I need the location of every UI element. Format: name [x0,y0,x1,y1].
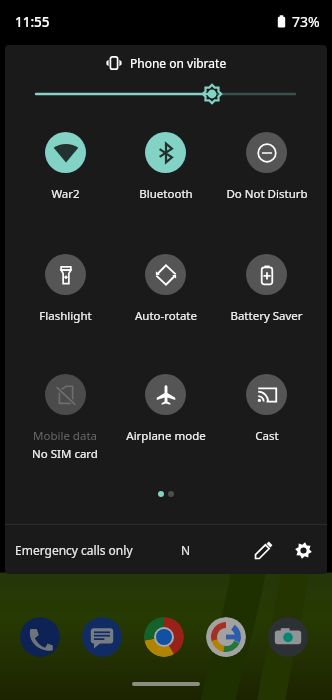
button[interactable]: App icon [268,617,308,657]
button[interactable]: Battery Saver [216,254,317,324]
staticText: Emergency calls only [15,542,133,558]
staticText: Battery Saver [230,308,303,324]
button[interactable]: App icon [206,617,246,657]
button[interactable]: Flashlight [15,254,115,324]
button[interactable]: Settings [287,532,323,568]
button[interactable]: Do Not Disturb [216,132,317,202]
button[interactable]: App icon [82,617,122,657]
staticText: Auto-rotate [135,308,197,324]
button[interactable]: Edit [245,532,281,568]
staticText: Do Not Disturb [226,186,308,202]
button[interactable]: Mobile data [15,374,115,462]
button[interactable]: War2 [15,132,115,202]
staticText: Cast [255,428,279,444]
staticText: Mobile data [33,428,97,444]
button[interactable]: Brightness [5,82,327,106]
button[interactable]: App icon [20,617,60,657]
staticText: Airplane mode [126,428,206,444]
staticText: Bluetooth [139,186,193,202]
staticText: Phone on vibrate [130,55,227,71]
staticText: Flashlight [39,308,92,324]
button[interactable]: App icon [144,617,184,657]
staticText: 73% [292,12,320,31]
staticText: No [181,542,194,558]
staticText: No SIM card [32,446,98,462]
button[interactable]: Airplane mode [115,374,216,444]
button[interactable]: Auto-rotate [115,254,216,324]
staticText: War2 [51,186,80,202]
staticText: 11:55 [15,13,50,31]
button[interactable]: Bluetooth [115,132,216,202]
button[interactable]: Cast [216,374,317,444]
